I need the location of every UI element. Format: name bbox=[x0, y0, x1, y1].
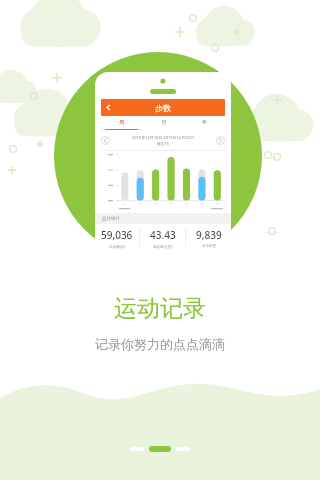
staticText: 年 bbox=[202, 119, 208, 126]
staticText: 总卡路里 bbox=[202, 244, 216, 248]
button[interactable]: Previous week bbox=[101, 130, 225, 150]
staticText: 记录你努力的点点滴滴 bbox=[95, 336, 225, 352]
button[interactable]: Page 2, current bbox=[149, 446, 171, 452]
button[interactable]: Page 3 bbox=[176, 447, 190, 451]
button[interactable]: Back bbox=[101, 99, 115, 116]
staticText: 步数 bbox=[155, 103, 171, 113]
staticText: 总步数(步) bbox=[109, 244, 126, 249]
button[interactable]: Page 1 bbox=[130, 447, 144, 451]
button[interactable]: 年 bbox=[184, 116, 225, 129]
staticText: 43.43 bbox=[150, 228, 176, 242]
staticText: 周 bbox=[119, 119, 125, 126]
staticText: 9,839 bbox=[196, 228, 222, 242]
button[interactable]: Previous week bbox=[101, 136, 110, 145]
button[interactable]: Back bbox=[101, 99, 225, 116]
staticText: 最近7天 bbox=[157, 141, 170, 146]
staticText: 总距离(公里) bbox=[153, 244, 173, 249]
button[interactable]: Next week bbox=[216, 136, 225, 145]
staticText: 月 bbox=[161, 119, 167, 126]
button[interactable]: 9,839 bbox=[186, 224, 231, 252]
staticText: 总计统计 bbox=[102, 216, 120, 222]
staticText: 2015年12月16日-2015年12月22日 bbox=[132, 135, 194, 140]
staticText: 59,036 bbox=[101, 228, 133, 242]
staticText: 运动记录 bbox=[114, 294, 206, 323]
button[interactable]: 59,036 bbox=[95, 224, 139, 252]
button[interactable]: 43.43 bbox=[140, 224, 185, 252]
button[interactable]: 周 bbox=[101, 116, 143, 129]
button[interactable]: 月 bbox=[143, 116, 184, 129]
